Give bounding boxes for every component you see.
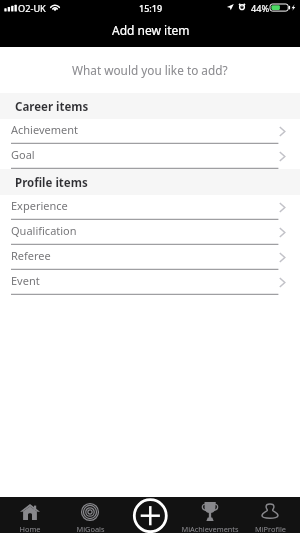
button[interactable]: Goal xyxy=(0,144,300,169)
button[interactable]: Achievement xyxy=(0,119,300,144)
staticText: 15:19 xyxy=(139,2,163,14)
staticText: 44% xyxy=(251,2,270,15)
staticText: Qualification xyxy=(11,223,77,238)
button[interactable]: Home xyxy=(0,497,60,533)
other: Add new item xyxy=(0,497,300,533)
staticText: Achievement xyxy=(11,122,78,137)
button[interactable]: MiGoals xyxy=(60,497,120,533)
button[interactable]: MiProfile xyxy=(240,497,300,533)
staticText: MiProfile xyxy=(255,524,286,533)
staticText: What would you like to add? xyxy=(72,62,228,78)
staticText: Experience xyxy=(11,198,68,213)
staticText: Home xyxy=(19,524,41,533)
button[interactable]: Qualification xyxy=(0,220,300,245)
staticText: Career items xyxy=(15,99,89,115)
staticText: O2-UK xyxy=(18,2,46,15)
staticText: MiAchievements xyxy=(181,524,239,533)
staticText: Profile items xyxy=(15,175,88,191)
button[interactable]: Add xyxy=(132,498,168,533)
button[interactable]: MiAchievements xyxy=(180,497,240,533)
button[interactable]: Referee xyxy=(0,245,300,270)
button[interactable]: Experience xyxy=(0,195,300,220)
staticText: MiGoals xyxy=(76,524,105,533)
staticText: Goal xyxy=(11,147,35,162)
staticText: Referee xyxy=(11,248,51,263)
staticText: Add new item xyxy=(112,22,190,38)
staticText: Event xyxy=(11,273,40,288)
button[interactable]: Event xyxy=(0,270,300,295)
